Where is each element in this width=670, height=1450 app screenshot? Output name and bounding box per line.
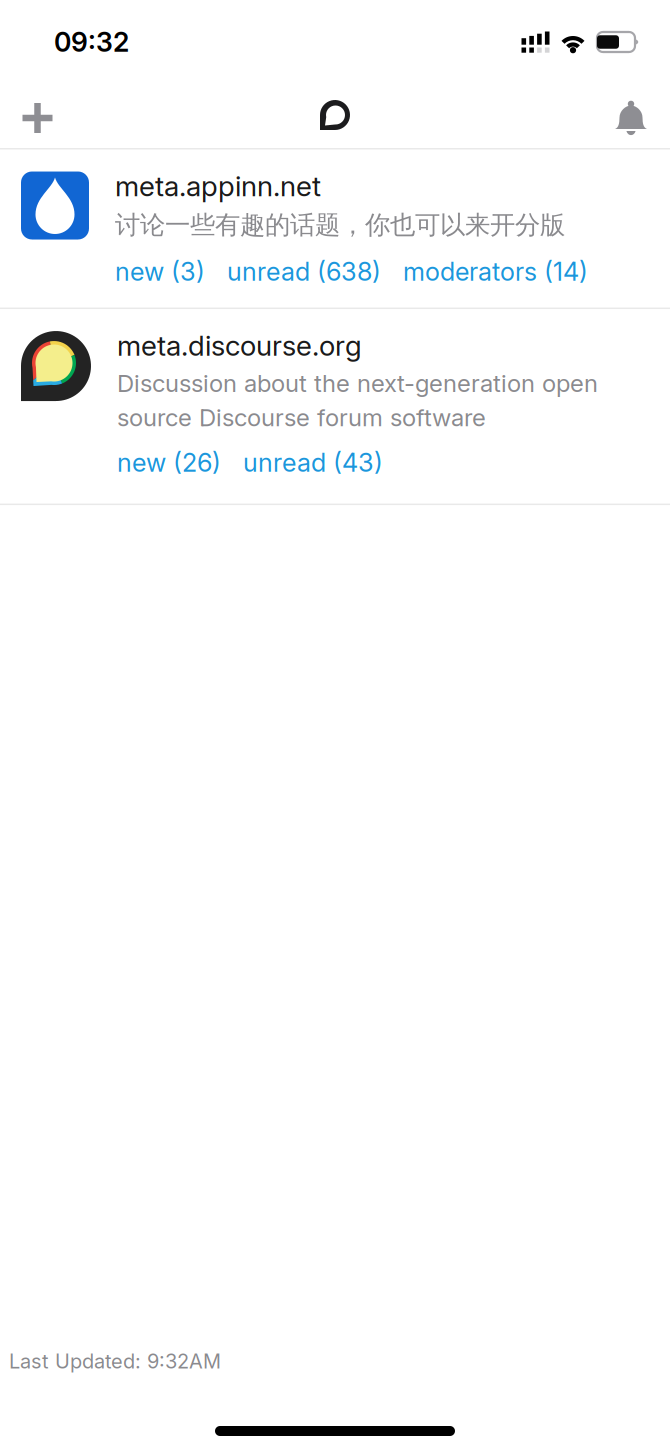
- staticText: meta.appinn.net: [115, 169, 321, 202]
- staticText: unread (638): [227, 257, 381, 286]
- staticText: new (26): [117, 448, 221, 478]
- button[interactable]: Notifications: [592, 78, 670, 148]
- staticText: new (3): [115, 257, 205, 286]
- button[interactable]: unread (638): [227, 257, 381, 286]
- staticText: Last Updated: 9:32AM: [9, 1349, 221, 1373]
- staticText: 讨论一些有趣的话题，你也可以来开分版: [115, 209, 565, 241]
- staticText: unread (43): [243, 448, 383, 478]
- staticText: 09:32: [54, 26, 129, 58]
- staticText: moderators (14): [403, 257, 588, 286]
- button[interactable]: new (26): [117, 448, 221, 478]
- staticText: Discussion about the next-generation ope…: [117, 369, 598, 432]
- button[interactable]: Add site: [0, 78, 75, 148]
- button[interactable]: unread (43): [243, 448, 383, 478]
- button[interactable]: meta.discourse.org: [0, 309, 670, 503]
- button[interactable]: meta.appinn.net: [0, 149, 670, 307]
- button[interactable]: new (3): [115, 257, 205, 286]
- button[interactable]: Discourse: [295, 78, 375, 148]
- staticText: meta.discourse.org: [117, 329, 362, 362]
- button[interactable]: moderators (14): [403, 257, 588, 286]
